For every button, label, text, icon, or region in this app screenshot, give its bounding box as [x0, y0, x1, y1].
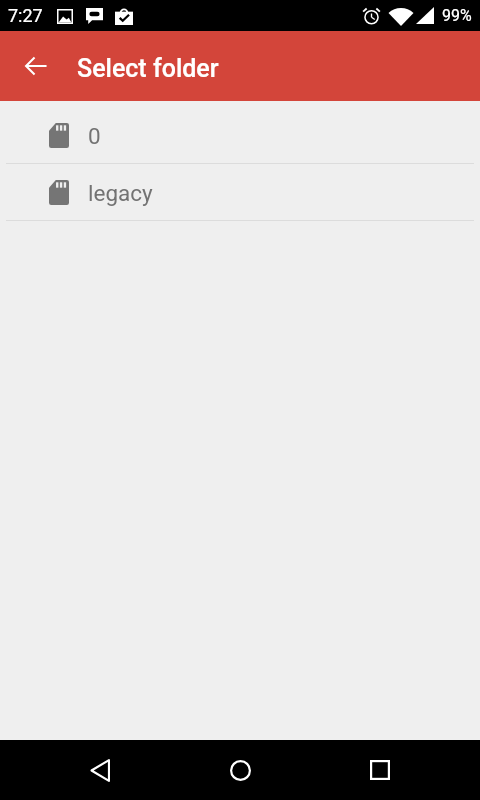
staticText: Select folder	[77, 54, 219, 83]
button[interactable]: Navigate up	[12, 42, 60, 90]
staticText: 0	[88, 123, 101, 149]
staticText: 7:27	[8, 5, 43, 26]
staticText: 99%	[442, 6, 472, 25]
button[interactable]: 0	[0, 107, 480, 163]
button[interactable]: legacy	[0, 164, 480, 220]
button[interactable]: Home	[206, 740, 274, 800]
button[interactable]: Back	[66, 740, 134, 800]
button[interactable]: Recent apps	[346, 740, 414, 800]
staticText: legacy	[88, 180, 153, 206]
